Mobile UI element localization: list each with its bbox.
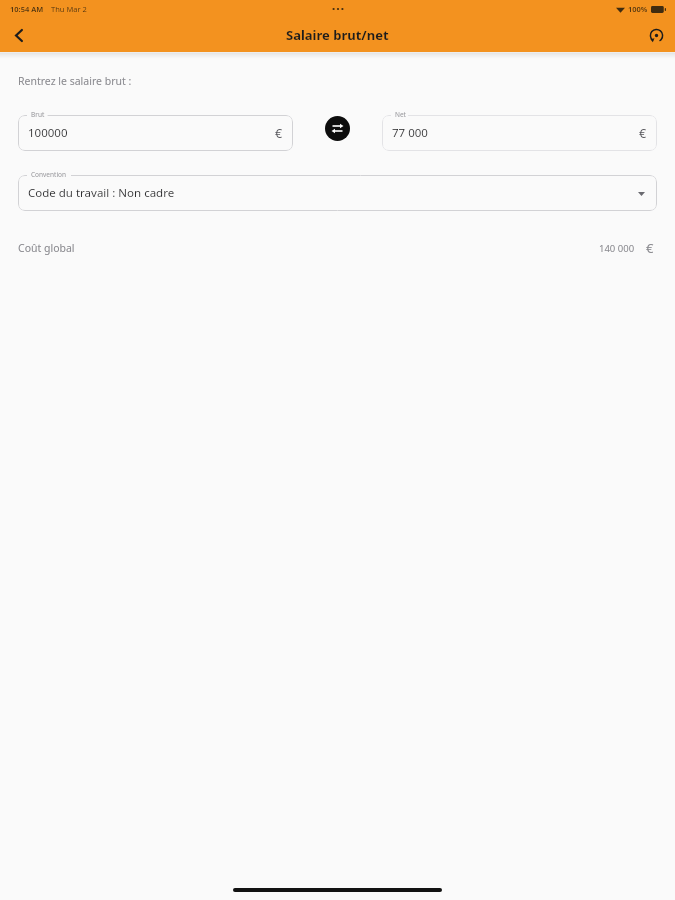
staticText: Convention — [31, 170, 67, 179]
staticText: 77 000 — [392, 125, 428, 141]
button[interactable]: History — [637, 18, 675, 52]
staticText: Rentrez le salaire brut : — [18, 74, 132, 88]
button[interactable]: Convention dropdown — [18, 175, 657, 211]
staticText: Salaire brut/net — [286, 26, 389, 44]
staticText: Code du travail : Non cadre — [28, 185, 175, 201]
staticText: Coût global — [18, 241, 75, 255]
button[interactable]: Back — [0, 18, 38, 52]
staticText: Brut — [31, 110, 45, 119]
staticText: 140 000 — [599, 242, 635, 255]
staticText: 10:54 AM — [10, 4, 44, 14]
button[interactable]: Swap brut and net — [293, 105, 382, 151]
staticText: Net — [395, 110, 406, 119]
button[interactable]: Coût global — [18, 239, 657, 257]
staticText: € — [646, 239, 654, 257]
staticText: € — [275, 125, 283, 142]
button[interactable]: 100000 — [18, 115, 293, 151]
staticText: Thu Mar 2 — [51, 4, 87, 14]
staticText: € — [639, 125, 647, 142]
staticText: 100% — [628, 4, 648, 14]
staticText: 100000 — [28, 125, 68, 141]
button[interactable]: 77 000 — [382, 115, 657, 151]
